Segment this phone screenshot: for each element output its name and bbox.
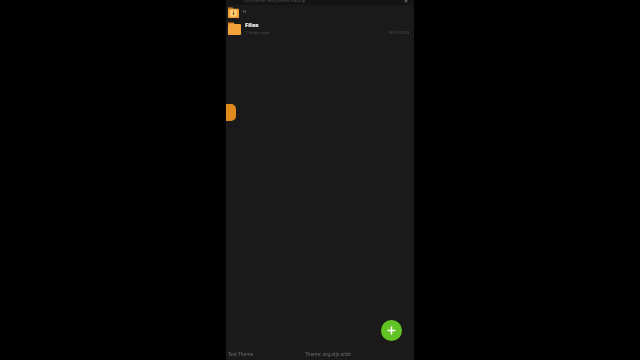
staticText: Files <box>245 21 259 29</box>
button[interactable]: Scroll indicator <box>226 104 236 121</box>
staticText: H <box>243 9 247 15</box>
button[interactable]: Add <box>381 320 402 341</box>
staticText: 16/01/2023 <box>388 30 410 35</box>
button[interactable]: Documents and photos backup <box>226 0 414 5</box>
staticText: Theme: org.atjs.orbit <box>305 351 352 357</box>
staticText: 1 folder now <box>245 30 270 36</box>
button[interactable]: Test Theme <box>228 351 254 357</box>
button[interactable]: Files <box>226 19 414 37</box>
staticText: Documents and photos backup <box>244 0 400 3</box>
button[interactable]: Theme: org.atjs.orbit <box>305 351 352 357</box>
button[interactable]: H <box>226 5 414 19</box>
staticText: Test Theme <box>228 351 254 357</box>
